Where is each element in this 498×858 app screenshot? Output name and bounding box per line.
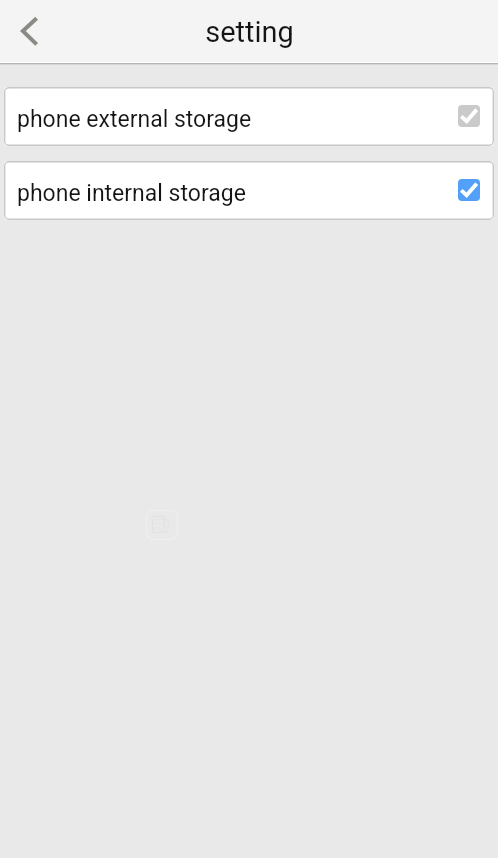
button[interactable]: phone internal storage	[4, 161, 494, 220]
staticText: phone internal storage	[17, 180, 246, 207]
button[interactable]: phone external storage	[4, 87, 494, 146]
button[interactable]: Toggle phone external storage	[458, 105, 480, 127]
button[interactable]: Back	[0, 3, 56, 59]
staticText: setting	[205, 15, 294, 49]
button[interactable]: Toggle phone internal storage	[458, 179, 480, 201]
staticText: phone external storage	[17, 106, 252, 133]
